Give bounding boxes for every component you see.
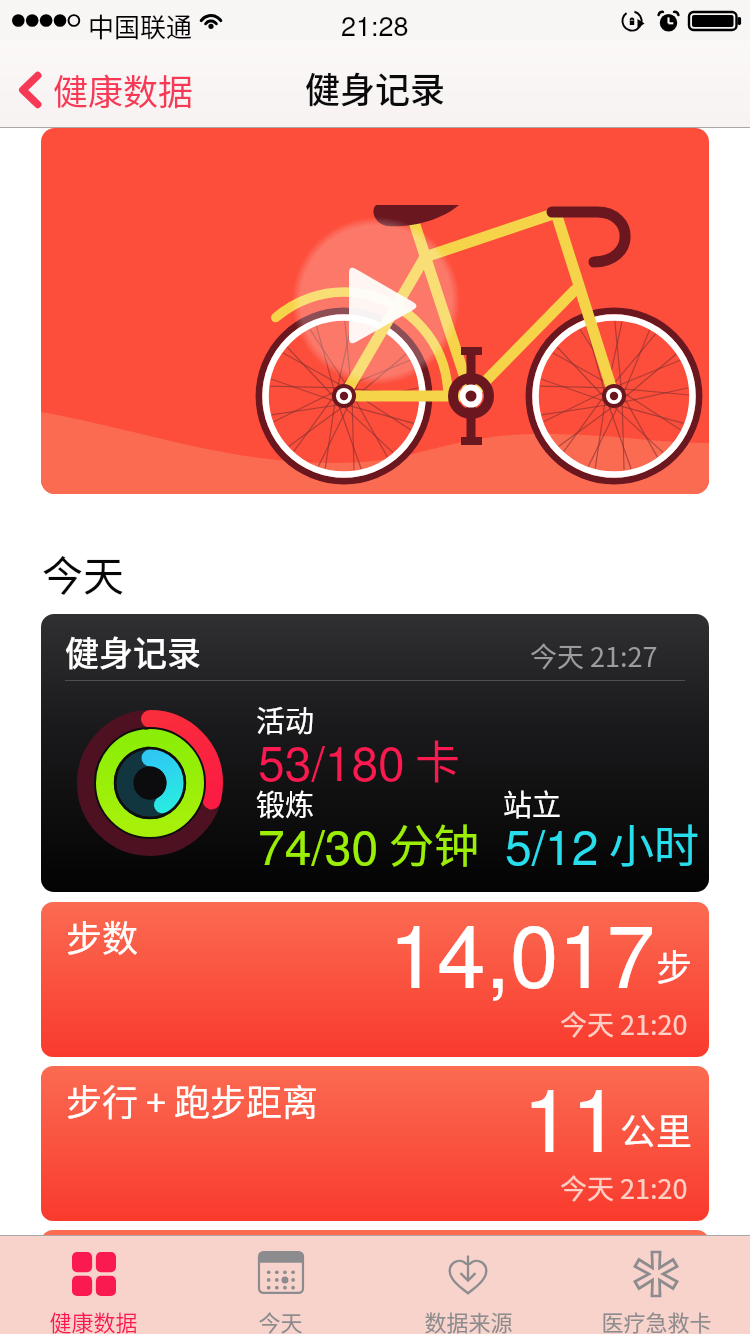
staticText: 步 (656, 939, 693, 991)
staticText: 今天 (258, 1305, 303, 1334)
staticText: 步数 (66, 910, 139, 962)
staticText: 健康数据 (49, 1305, 138, 1334)
staticText: 步行 + 跑步距离 (66, 1074, 319, 1126)
button[interactable]: 健康数据 (0, 1236, 187, 1334)
staticText: 健身记录 (305, 62, 446, 113)
staticText: 21:28 (341, 5, 409, 44)
staticText: 14,017 (389, 902, 656, 1013)
button[interactable]: 健康数据 (8, 58, 204, 121)
staticText: 健身记录 (65, 627, 201, 676)
button[interactable]: 步数 (41, 902, 709, 1057)
staticText: 医疗急救卡 (601, 1305, 712, 1334)
staticText: 今天 (42, 543, 124, 602)
staticText: 今天 21:20 (560, 1004, 688, 1043)
staticText: 数据来源 (424, 1305, 513, 1334)
staticText: 今天 21:27 (530, 636, 658, 675)
staticText: 站立 (503, 782, 562, 824)
button[interactable]: 今天 (187, 1236, 374, 1334)
staticText: 健康数据 (53, 64, 194, 115)
staticText: 11 (523, 1066, 620, 1177)
button[interactable]: 步行 + 跑步距离 (41, 1066, 709, 1221)
button[interactable] (41, 1230, 709, 1334)
button[interactable]: Play workout video (41, 128, 709, 494)
staticText: 分钟 (379, 811, 480, 876)
button[interactable]: 数据来源 (374, 1236, 562, 1334)
staticText: 卡 (405, 727, 461, 792)
staticText: 锻炼 (256, 782, 315, 824)
button[interactable]: 健身记录 (41, 614, 709, 892)
staticText: 公里 (620, 1103, 693, 1155)
staticText: 74/30 (258, 810, 379, 879)
staticText: 中国联通 (88, 7, 193, 45)
staticText: 5/12 (505, 810, 599, 879)
staticText: 活动 (256, 698, 315, 740)
staticText: 今天 21:20 (560, 1168, 688, 1207)
button[interactable]: 医疗急救卡 (562, 1236, 750, 1334)
staticText: 53/180 (258, 726, 405, 795)
staticText: 小时 (599, 811, 700, 876)
